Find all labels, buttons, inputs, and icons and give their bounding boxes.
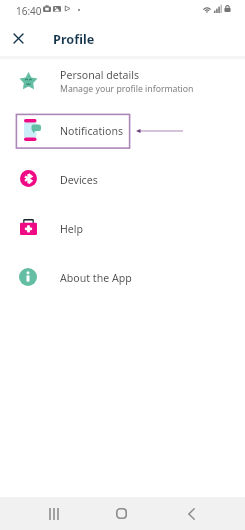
button[interactable]: Personal details bbox=[0, 56, 245, 105]
staticText: 16:40 bbox=[16, 4, 42, 18]
staticText: Devices bbox=[60, 173, 98, 187]
button[interactable]: About the App bbox=[0, 252, 245, 301]
button[interactable]: Help bbox=[0, 203, 245, 252]
staticText: Personal details bbox=[60, 68, 140, 82]
button[interactable]: Home bbox=[101, 497, 141, 530]
staticText: Profile bbox=[53, 30, 95, 47]
button[interactable]: Close bbox=[10, 30, 26, 46]
button[interactable]: Back bbox=[171, 497, 211, 530]
staticText: Help bbox=[60, 222, 84, 236]
button[interactable]: Notifications bbox=[0, 105, 245, 154]
button[interactable]: Devices bbox=[0, 154, 245, 203]
staticText: About the App bbox=[60, 271, 132, 285]
button[interactable]: Recents bbox=[34, 497, 74, 530]
staticText: Notifications bbox=[60, 124, 124, 138]
staticText: Manage your profile information bbox=[60, 83, 194, 95]
